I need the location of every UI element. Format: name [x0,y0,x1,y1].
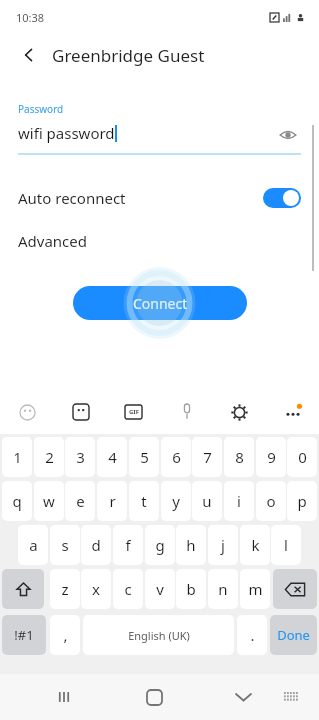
staticText: 5 [140,447,149,467]
button[interactable]: i [224,481,254,521]
button[interactable]: 1 [2,437,32,477]
button[interactable]: Settings [213,390,266,434]
staticText: z [61,579,69,599]
staticText: q [12,491,22,511]
button[interactable]: c [113,569,143,609]
button[interactable]: m [240,569,270,609]
button[interactable]: , [50,615,80,655]
button[interactable]: h [176,525,206,565]
staticText: Password [18,102,64,116]
button[interactable]: Home [130,674,178,720]
staticText: t [141,491,147,511]
button[interactable]: Back [14,40,44,70]
button[interactable]: 6 [161,437,191,477]
staticText: y [172,491,180,511]
button[interactable]: j [208,525,238,565]
button[interactable]: s [50,525,80,565]
button[interactable]: l [271,525,301,565]
button[interactable]: 0 [287,437,317,477]
button[interactable]: w [34,481,64,521]
button[interactable]: x [81,569,111,609]
staticText: d [91,535,101,555]
button[interactable]: g [145,525,175,565]
button[interactable]: Stickers [54,390,107,434]
staticText: e [76,491,85,511]
button[interactable]: 5 [129,437,159,477]
staticText: m [248,579,263,599]
button[interactable]: English (UK) [83,615,234,655]
staticText: GIF [129,408,139,416]
button[interactable]: Backspace [273,569,317,609]
button[interactable]: 8 [224,437,254,477]
button[interactable]: t [129,481,159,521]
staticText: !#1 [14,626,34,644]
button[interactable]: Recent apps [40,674,88,720]
button[interactable]: n [208,569,238,609]
staticText: u [202,491,212,511]
staticText: r [109,491,116,511]
button[interactable]: q [2,481,32,521]
staticText: b [186,579,196,599]
button[interactable]: 7 [192,437,222,477]
staticText: g [155,535,165,555]
button[interactable]: e [65,481,95,521]
staticText: 4 [108,447,117,467]
staticText: wifi password [18,123,115,143]
staticText: 0 [298,447,307,467]
button[interactable]: GIF [107,390,160,434]
staticText: w [43,491,55,511]
staticText: i [237,491,241,511]
staticText: Done [277,626,310,644]
button[interactable]: 9 [256,437,286,477]
button[interactable]: f [113,525,143,565]
staticText: 2 [45,447,54,467]
button[interactable]: o [256,481,286,521]
button[interactable]: !#1 [2,615,46,655]
button[interactable]: a [18,525,48,565]
button[interactable]: Advanced [18,231,88,251]
button[interactable]: . [237,615,267,655]
staticText: a [29,535,38,555]
staticText: Auto reconnect [18,188,126,208]
staticText: o [266,491,276,511]
button[interactable]: More [266,390,319,434]
staticText: 7 [203,447,212,467]
staticText: x [92,579,100,599]
button[interactable]: 2 [34,437,64,477]
button[interactable]: 3 [65,437,95,477]
button[interactable]: Emoji [0,390,54,434]
staticText: f [125,535,131,555]
button[interactable]: Shift [2,569,44,609]
button[interactable]: Show password [275,123,301,147]
button[interactable]: Auto reconnect [0,183,319,213]
staticText: s [61,535,69,555]
staticText: 1 [13,447,22,467]
button[interactable]: r [97,481,127,521]
button[interactable]: v [145,569,175,609]
staticText: , [63,625,68,645]
button[interactable]: p [287,481,317,521]
staticText: j [221,535,225,555]
button[interactable]: 4 [97,437,127,477]
button[interactable]: b [176,569,206,609]
button[interactable]: d [81,525,111,565]
staticText: 8 [235,447,244,467]
staticText: 9 [267,447,276,467]
button[interactable]: Hide keyboard [221,675,265,719]
button[interactable]: z [50,569,80,609]
staticText: 3 [76,447,85,467]
button[interactable]: k [240,525,270,565]
button[interactable]: u [192,481,222,521]
staticText: English (UK) [128,628,190,643]
staticText: h [186,535,196,555]
button[interactable]: Voice input [160,390,213,434]
button[interactable]: y [161,481,191,521]
button[interactable]: Switch keyboard [271,677,311,717]
button[interactable]: Connect [73,286,247,320]
staticText: Greenbridge Guest [52,44,205,67]
staticText: l [284,535,288,555]
button[interactable]: Done [270,615,317,655]
staticText: 6 [172,447,181,467]
staticText: 10:38 [16,10,45,25]
staticText: p [297,491,307,511]
